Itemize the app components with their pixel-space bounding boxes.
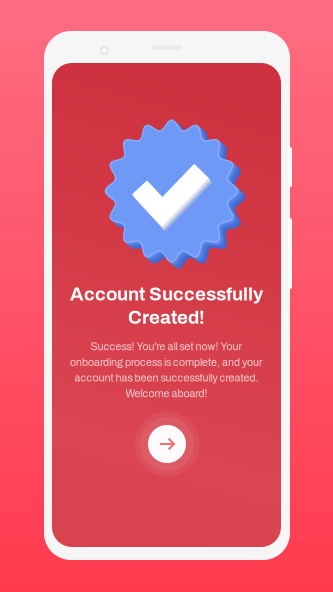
staticText: Success! You're all set now! Your: [90, 341, 242, 353]
staticText: onboarding process is complete, and your: [70, 357, 263, 368]
button[interactable]: Continue: [134, 411, 200, 477]
staticText: account has been successfully created.: [74, 372, 258, 384]
staticText: Created!: [128, 307, 205, 328]
staticText: Welcome aboard!: [125, 388, 207, 399]
staticText: Account Successfully: [70, 284, 263, 304]
